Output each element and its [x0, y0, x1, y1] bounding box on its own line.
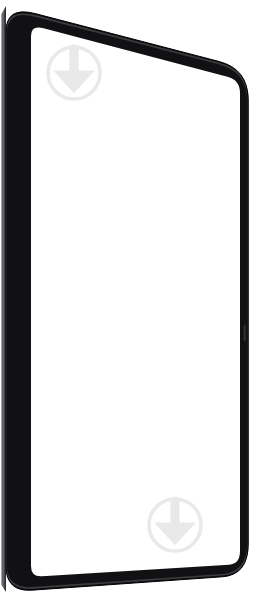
button[interactable]: Tablet product photo	[0, 0, 256, 600]
